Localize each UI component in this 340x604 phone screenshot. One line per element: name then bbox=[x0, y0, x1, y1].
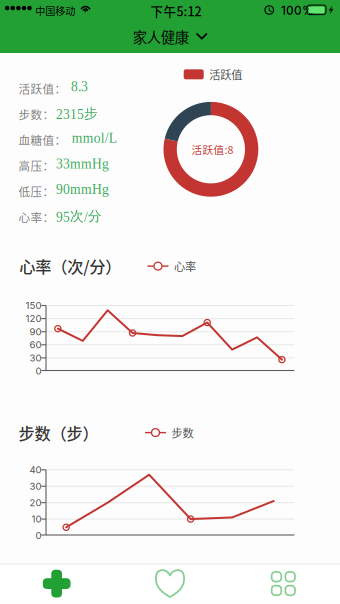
staticText: 血糖值： bbox=[18, 131, 66, 148]
staticText: 20 bbox=[29, 497, 41, 508]
staticText: 150 bbox=[25, 300, 41, 311]
staticText: 活跃值： bbox=[18, 80, 66, 97]
staticText: 90mmHg bbox=[56, 182, 109, 197]
staticText: 中国移动 bbox=[35, 3, 75, 18]
staticText: 2315步 bbox=[56, 105, 98, 122]
button[interactable]: 更多 bbox=[227, 564, 340, 604]
staticText: 90 bbox=[29, 326, 41, 337]
staticText: 高压： bbox=[18, 157, 54, 174]
staticText: 33mmHg bbox=[56, 156, 109, 171]
staticText: 60 bbox=[29, 339, 41, 351]
staticText: 30 bbox=[29, 480, 41, 492]
staticText: 0 bbox=[35, 365, 41, 377]
button[interactable]: 家人健康 bbox=[90, 20, 250, 53]
staticText: 10 bbox=[31, 513, 41, 525]
staticText: 家人健康 bbox=[133, 26, 189, 47]
staticText: 下午5:12 bbox=[150, 2, 201, 20]
staticText: 100% bbox=[281, 3, 314, 18]
staticText: 120 bbox=[25, 313, 41, 324]
staticText: 心率 bbox=[174, 258, 196, 274]
staticText: 步数： bbox=[18, 106, 54, 122]
staticText: 40 bbox=[29, 464, 41, 476]
staticText: 8.3 bbox=[71, 79, 88, 94]
staticText: 心率（次/分） bbox=[19, 254, 121, 278]
button[interactable]: 健康 bbox=[113, 564, 227, 604]
staticText: mmol/L bbox=[72, 131, 117, 146]
staticText: 步数 bbox=[171, 424, 193, 441]
button[interactable]: 添加 bbox=[0, 564, 113, 604]
staticText: 活跃值:8 bbox=[191, 142, 233, 157]
staticText: 低压： bbox=[18, 183, 54, 200]
staticText: 心率： bbox=[18, 208, 54, 225]
staticText: 95次/分 bbox=[56, 208, 102, 225]
staticText: 活跃值 bbox=[209, 66, 242, 82]
staticText: 30 bbox=[29, 352, 41, 364]
staticText: 0 bbox=[35, 530, 41, 541]
staticText: 步数（步） bbox=[18, 421, 98, 444]
